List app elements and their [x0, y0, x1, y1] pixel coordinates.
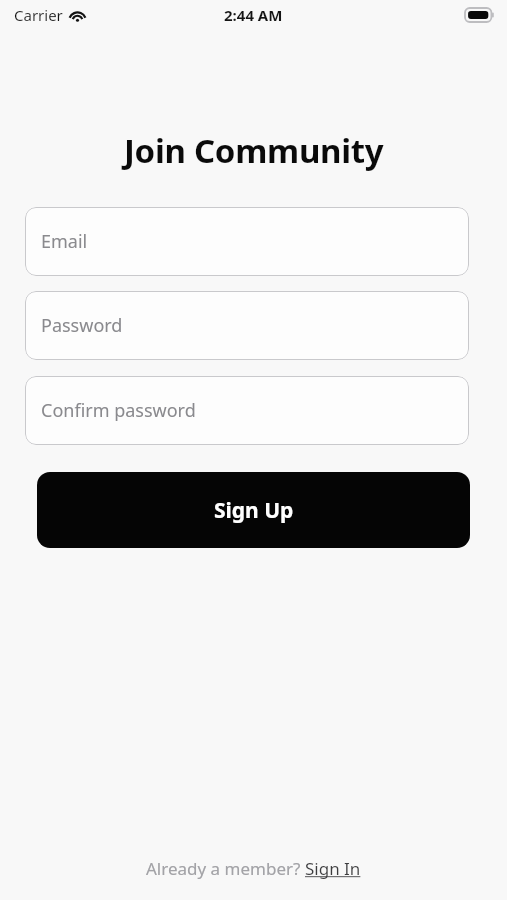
other: Wi-Fi signal — [69, 9, 86, 22]
staticText: Sign Up — [214, 496, 294, 525]
staticText: Confirm password — [41, 398, 196, 423]
staticText: Already a member? — [146, 857, 305, 880]
button[interactable]: Email — [25, 207, 469, 276]
staticText: Email — [41, 229, 88, 254]
button[interactable]: Sign In — [305, 857, 361, 880]
other: Battery full — [465, 8, 495, 22]
button[interactable]: Confirm password — [25, 376, 469, 445]
button[interactable]: Password — [25, 291, 469, 360]
staticText: Join Community — [124, 128, 384, 173]
staticText: Password — [41, 313, 123, 338]
button[interactable]: Sign Up — [37, 472, 470, 548]
staticText: Carrier — [14, 5, 63, 25]
staticText: 2:44 AM — [224, 5, 283, 25]
staticText: Sign In — [305, 857, 361, 880]
